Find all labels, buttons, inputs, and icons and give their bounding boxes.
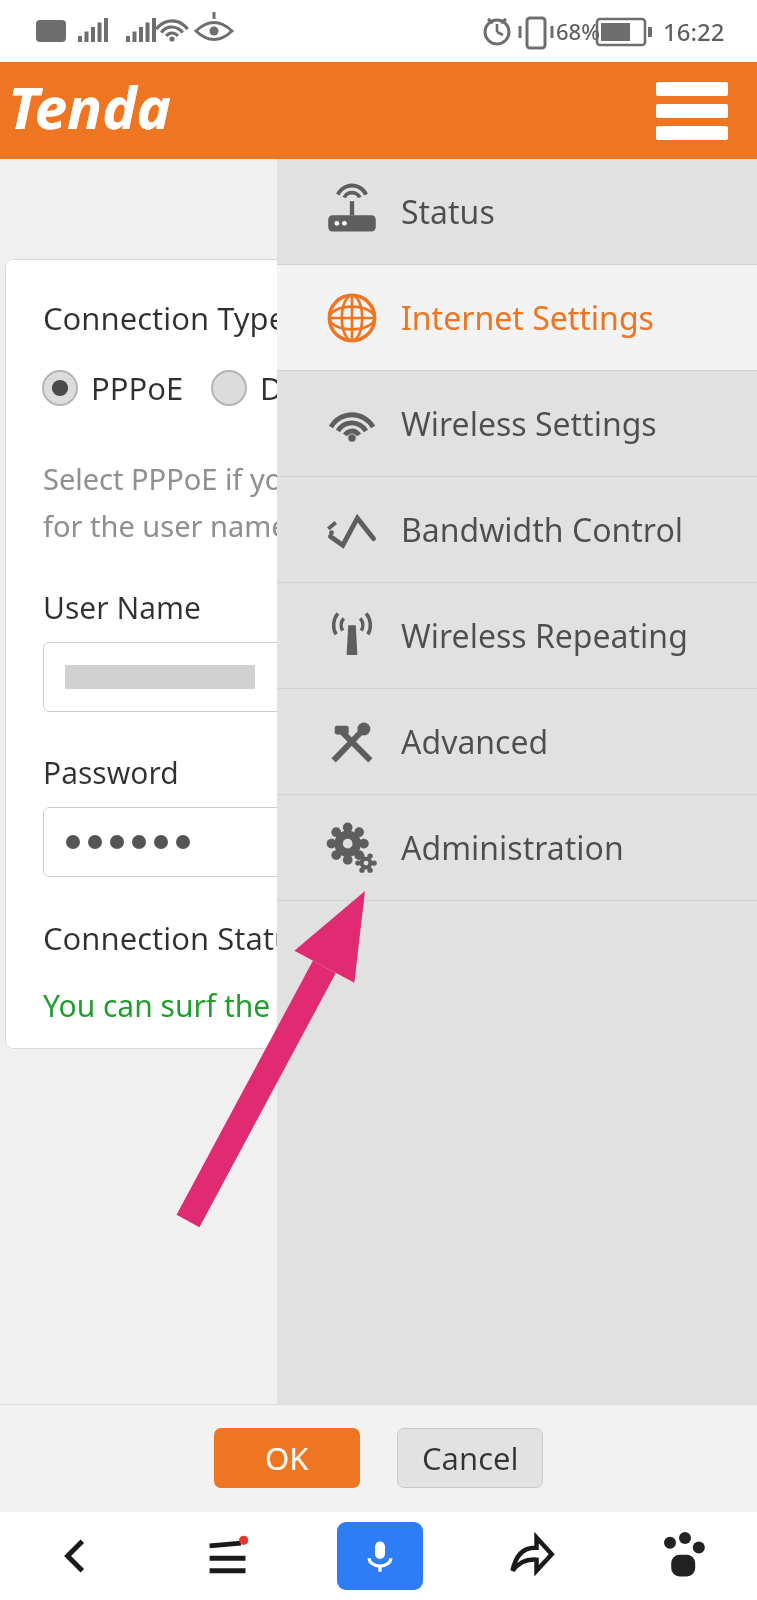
staticText: OK bbox=[265, 1437, 309, 1479]
button[interactable] bbox=[43, 807, 293, 877]
staticText: Tenda bbox=[8, 67, 171, 146]
staticText: 68% bbox=[556, 16, 600, 46]
staticText: PPPoE bbox=[91, 367, 184, 409]
staticText: Wireless Repeating bbox=[401, 614, 688, 658]
button[interactable]: Share bbox=[455, 1512, 606, 1600]
staticText: User Name bbox=[43, 587, 202, 628]
staticText: Bandwidth Control bbox=[401, 508, 684, 552]
button[interactable]: Menu bbox=[647, 76, 737, 146]
button[interactable]: Wireless Repeating bbox=[277, 583, 757, 688]
button[interactable]: Dynamic bbox=[212, 367, 387, 409]
staticText: Status bbox=[401, 190, 495, 234]
button[interactable]: Voice search bbox=[337, 1522, 423, 1590]
button[interactable]: Back bbox=[0, 1512, 152, 1600]
button[interactable]: Status bbox=[277, 159, 757, 264]
staticText: 16:22 bbox=[663, 15, 725, 48]
staticText: for the user name a bbox=[43, 506, 312, 545]
staticText: You can surf the In bbox=[43, 985, 307, 1026]
button[interactable]: OK bbox=[214, 1428, 360, 1488]
button[interactable]: Advanced bbox=[277, 689, 757, 794]
staticText: Connection Type bbox=[43, 297, 287, 339]
button[interactable] bbox=[43, 642, 293, 712]
staticText: Cancel bbox=[422, 1437, 519, 1479]
button[interactable]: Administration bbox=[277, 795, 757, 900]
staticText: Administration bbox=[401, 826, 624, 870]
staticText: Connection Status bbox=[43, 917, 308, 959]
staticText: Advanced bbox=[401, 720, 549, 764]
button[interactable]: Bandwidth Control bbox=[277, 477, 757, 582]
button[interactable]: Cancel bbox=[397, 1428, 543, 1488]
staticText: Wireless Settings bbox=[401, 402, 657, 446]
button[interactable]: Internet Settings bbox=[277, 265, 757, 370]
staticText: Dynamic bbox=[260, 367, 387, 409]
button[interactable]: Wireless Settings bbox=[277, 371, 757, 476]
button[interactable]: PPPoE bbox=[43, 367, 184, 409]
staticText: Password bbox=[43, 752, 179, 793]
staticText: Select PPPoE if you bbox=[43, 459, 301, 498]
staticText: Internet Settings bbox=[401, 296, 654, 340]
button[interactable]: Menu bbox=[152, 1512, 304, 1600]
